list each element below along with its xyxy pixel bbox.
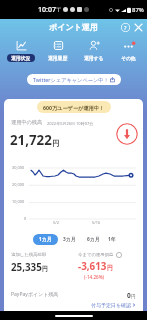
- button[interactable]: 付与予定日を確認: [91, 302, 136, 308]
- button[interactable]: 3カ月: [61, 234, 78, 245]
- staticText: 運用中の残高: [11, 119, 43, 126]
- staticText: 1年: [108, 236, 116, 243]
- staticText: 円: [107, 264, 114, 272]
- button[interactable]: その他: [116, 39, 141, 62]
- button[interactable]: Help: [119, 21, 131, 33]
- staticText: その他: [121, 55, 136, 61]
- staticText: 円: [131, 294, 136, 300]
- button[interactable]: Close: [132, 21, 144, 33]
- staticText: Twitterシェアキャンペーン中！: [33, 76, 109, 83]
- staticText: 運用状況: [11, 55, 31, 61]
- staticText: 運用する: [84, 55, 104, 61]
- staticText: 10:07: [38, 5, 56, 15]
- staticText: 10,000: [12, 199, 25, 204]
- button[interactable]: 運用履歴: [43, 39, 73, 62]
- staticText: 5/2: [53, 220, 59, 225]
- staticText: 追加した残高総額: [11, 252, 47, 258]
- staticText: 今までの運用損益: [78, 252, 114, 258]
- staticText: 5/16: [92, 220, 101, 225]
- staticText: 0: [127, 291, 131, 300]
- staticText: 87%: [132, 6, 144, 14]
- staticText: 0: [24, 216, 27, 221]
- staticText: (-14.26%): [84, 274, 105, 280]
- staticText: 2022年5月26日 10時07分: [47, 121, 94, 126]
- staticText: 20,000: [12, 182, 25, 187]
- staticText: ?: [124, 24, 127, 31]
- button[interactable]: 運用状況: [6, 39, 36, 62]
- button[interactable]: 1年: [106, 234, 118, 245]
- staticText: 3カ月: [63, 236, 76, 243]
- staticText: 運用履歴: [48, 55, 68, 61]
- staticText: 6カ月: [87, 236, 100, 243]
- staticText: 円: [52, 139, 60, 148]
- staticText: -3,613: [78, 260, 107, 273]
- staticText: 付与予定日を確認: [91, 302, 132, 308]
- button[interactable]: Info: [116, 252, 122, 258]
- button[interactable]: 600万ユーザーが運用中！: [37, 101, 111, 113]
- staticText: PayPayポイント残高: [11, 291, 59, 298]
- staticText: 600万ユーザーが運用中！: [43, 104, 105, 111]
- button[interactable]: Twitterシェアキャンペーン中！: [27, 74, 121, 85]
- staticText: 円: [42, 265, 49, 273]
- staticText: 21,722: [10, 131, 52, 149]
- button[interactable]: 運用する: [79, 39, 109, 62]
- button[interactable]: Withdraw points: [116, 123, 138, 145]
- button[interactable]: 1カ月: [33, 234, 58, 245]
- staticText: ポイント運用: [49, 22, 98, 32]
- staticText: 1カ月: [39, 236, 52, 243]
- staticText: 30,000: [12, 165, 25, 170]
- button[interactable]: 6カ月: [85, 234, 102, 245]
- staticText: 25,335: [11, 261, 42, 274]
